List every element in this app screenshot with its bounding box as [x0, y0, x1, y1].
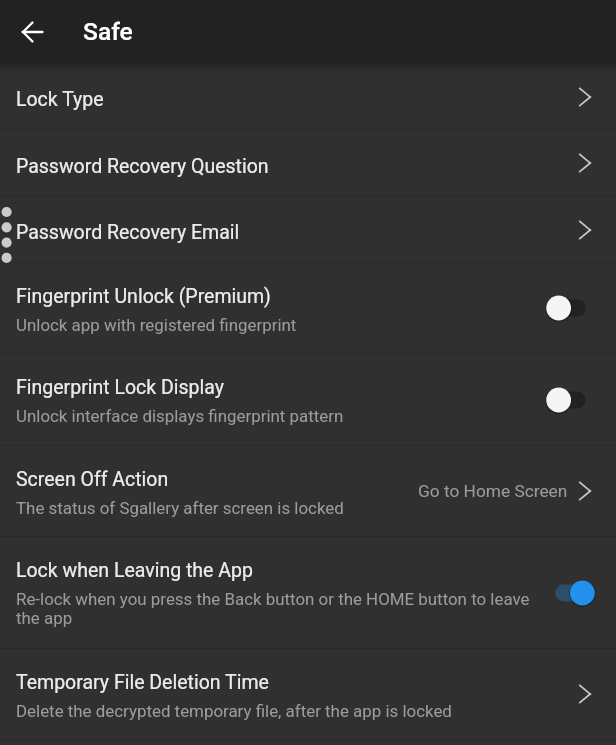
button[interactable]: Open	[572, 217, 598, 243]
button[interactable]: Lock when Leaving the App	[0, 537, 616, 648]
staticText: Password Recovery Email	[16, 221, 240, 244]
staticText: Unlock interface displays fingerprint pa…	[16, 406, 344, 426]
button[interactable]: Switch on	[555, 580, 595, 606]
staticText: Fingerprint Lock Display	[16, 376, 225, 399]
button[interactable]: Switch off	[546, 387, 586, 413]
staticText: Go to Home Screen	[418, 481, 568, 501]
staticText: Delete the decrypted temporary file, aft…	[16, 701, 452, 721]
button[interactable]: Back	[9, 8, 57, 56]
staticText: Re-lock when you press the Back button o…	[16, 589, 556, 628]
button[interactable]: Switch off	[546, 295, 586, 321]
staticText: Temporary File Deletion Time	[16, 671, 269, 694]
button[interactable]: Screen Off Action	[0, 446, 616, 536]
staticText: Unlock app with registered fingerprint	[16, 315, 297, 335]
button[interactable]: Fingerprint Unlock (Premium)	[0, 263, 616, 353]
staticText: Password Recovery Question	[16, 155, 269, 178]
button[interactable]: Fingerprint Lock Display	[0, 354, 616, 445]
button[interactable]: Lock Type	[0, 64, 616, 129]
staticText: The status of Sgallery after screen is l…	[16, 498, 344, 518]
staticText: Lock when Leaving the App	[16, 559, 253, 582]
staticText: Lock Type	[16, 88, 104, 111]
button[interactable]: Open	[572, 681, 598, 707]
staticText: Fingerprint Unlock (Premium)	[16, 285, 271, 308]
button[interactable]: Temporary File Deletion Time	[0, 649, 616, 739]
staticText: Screen Off Action	[16, 468, 169, 491]
button[interactable]: Password Recovery Question	[0, 130, 616, 196]
button[interactable]: Password Recovery Email	[0, 197, 616, 262]
staticText: Safe	[83, 17, 133, 46]
button[interactable]: Open	[572, 84, 598, 110]
button[interactable]: Open	[572, 150, 598, 176]
button[interactable]: Open	[572, 478, 598, 504]
